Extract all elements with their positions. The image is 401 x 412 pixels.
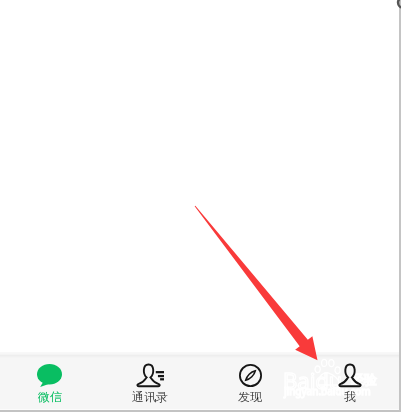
staticText: 微信 <box>38 389 62 404</box>
staticText: 通讯录 <box>132 389 168 404</box>
button[interactable]: 发现 <box>200 352 300 409</box>
staticText: 发现 <box>238 389 262 404</box>
button[interactable]: 我 <box>300 352 400 409</box>
staticText: 我 <box>344 389 356 404</box>
button[interactable]: 微信 <box>0 352 100 409</box>
button[interactable]: 通讯录 <box>100 352 200 409</box>
